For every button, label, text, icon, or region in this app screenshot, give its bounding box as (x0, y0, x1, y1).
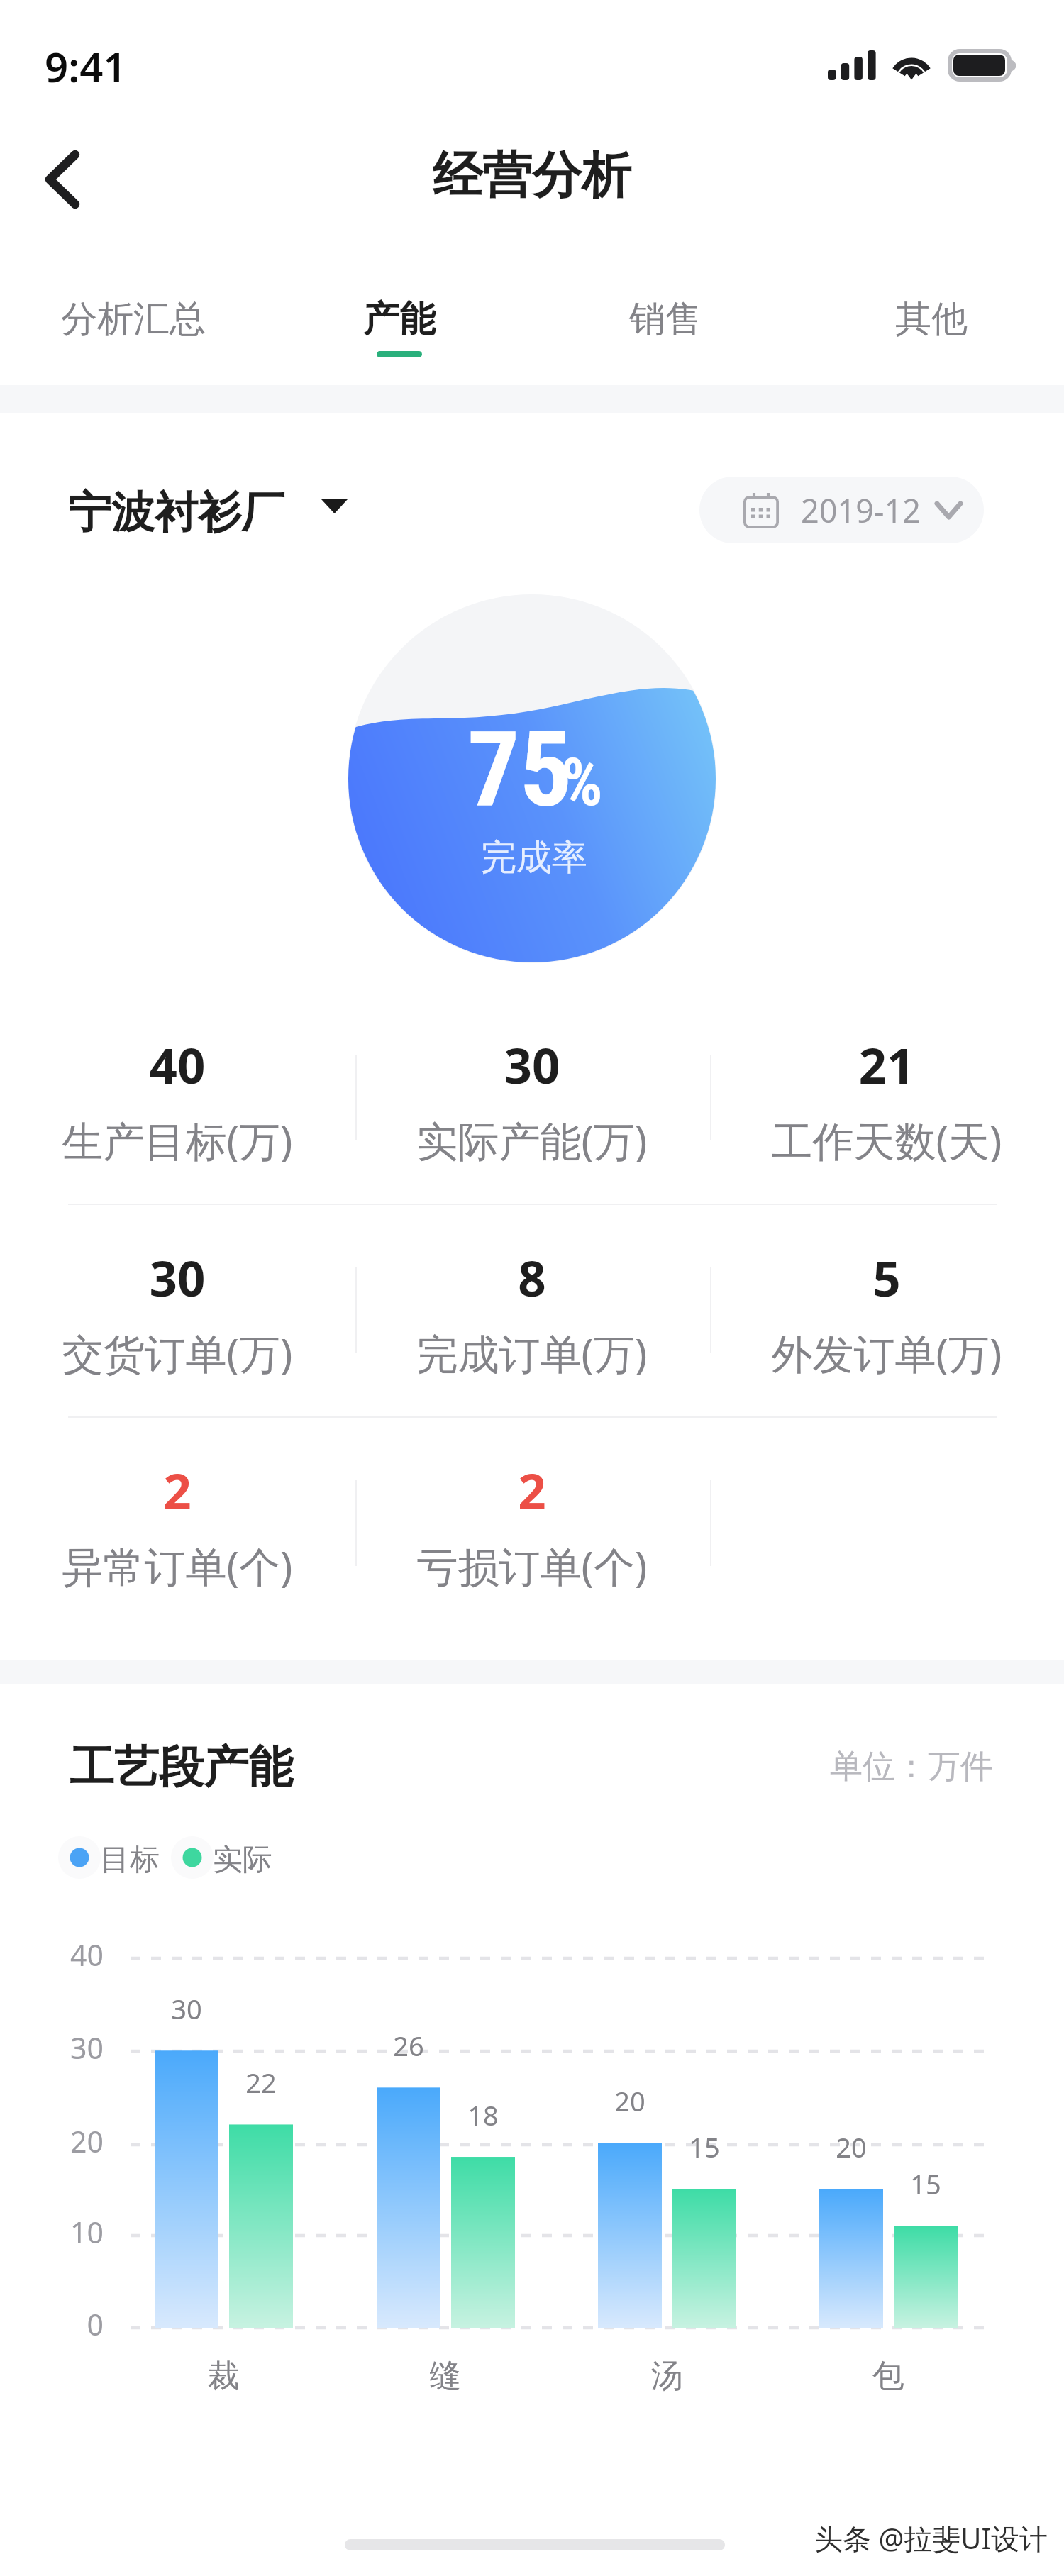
staticText: 75 (467, 710, 572, 831)
staticText: 目标 (100, 1841, 160, 1879)
staticText: 分析汇总 (61, 296, 206, 342)
staticText: 生产目标(万) (7, 1112, 348, 1168)
staticText: 20 (766, 2128, 936, 2165)
staticText: 实际 (213, 1841, 272, 1879)
staticText: 工艺段产能 (70, 1739, 293, 1795)
staticText: 30 (7, 1244, 348, 1311)
staticText: 产能 (363, 296, 436, 342)
staticText: 2019-12 (801, 489, 921, 532)
staticText: 缝 (360, 2356, 531, 2397)
staticText: 5 (716, 1244, 1057, 1311)
staticText: 单位：万件 (638, 1746, 993, 1787)
staticText: 0 (17, 2304, 104, 2344)
staticText: 8 (362, 1244, 702, 1311)
staticText: 亏损订单(个) (362, 1538, 702, 1594)
staticText: 30 (17, 2028, 104, 2067)
staticText: 15 (841, 2165, 1011, 2202)
staticText: 经营分析 (177, 145, 887, 207)
staticText: 工作天数(天) (716, 1112, 1057, 1168)
button[interactable]: 其他 (798, 287, 1064, 386)
button[interactable]: 分析汇总 (0, 287, 266, 386)
staticText: 30 (101, 1990, 272, 2027)
staticText: 头条 @拉斐UI设计 (814, 2519, 1048, 2558)
staticText: 2 (362, 1457, 702, 1523)
staticText: 裁 (138, 2356, 309, 2397)
button[interactable]: Back (14, 131, 111, 227)
staticText: 20 (17, 2121, 104, 2161)
staticText: 2 (7, 1457, 348, 1523)
staticText: 实际产能(万) (362, 1112, 702, 1168)
staticText: 完成订单(万) (362, 1325, 702, 1381)
staticText: 30 (362, 1031, 702, 1098)
staticText: 10 (17, 2212, 104, 2252)
button[interactable]: 宁波衬衫厂 (68, 485, 348, 540)
staticText: 26 (323, 2027, 494, 2064)
staticText: 包 (803, 2356, 973, 2397)
staticText: 40 (7, 1031, 348, 1098)
staticText: 完成率 (321, 835, 747, 880)
staticText: 18 (398, 2097, 568, 2133)
button[interactable]: 2019-12 (699, 477, 984, 543)
staticText: % (561, 745, 603, 821)
staticText: 21 (716, 1031, 1057, 1098)
staticText: 异常订单(个) (7, 1538, 348, 1594)
staticText: 22 (176, 2064, 346, 2101)
staticText: 15 (619, 2128, 789, 2165)
button[interactable]: 产能 (266, 287, 532, 386)
staticText: 其他 (895, 296, 968, 342)
staticText: 40 (17, 1935, 104, 1975)
staticText: 交货订单(万) (7, 1325, 348, 1381)
staticText: 销售 (629, 296, 702, 342)
staticText: 宁波衬衫厂 (68, 485, 284, 540)
staticText: 外发订单(万) (716, 1325, 1057, 1381)
button[interactable]: 销售 (532, 287, 798, 386)
staticText: 汤 (582, 2356, 752, 2397)
staticText: 20 (545, 2082, 715, 2119)
staticText: 9:41 (45, 38, 127, 94)
